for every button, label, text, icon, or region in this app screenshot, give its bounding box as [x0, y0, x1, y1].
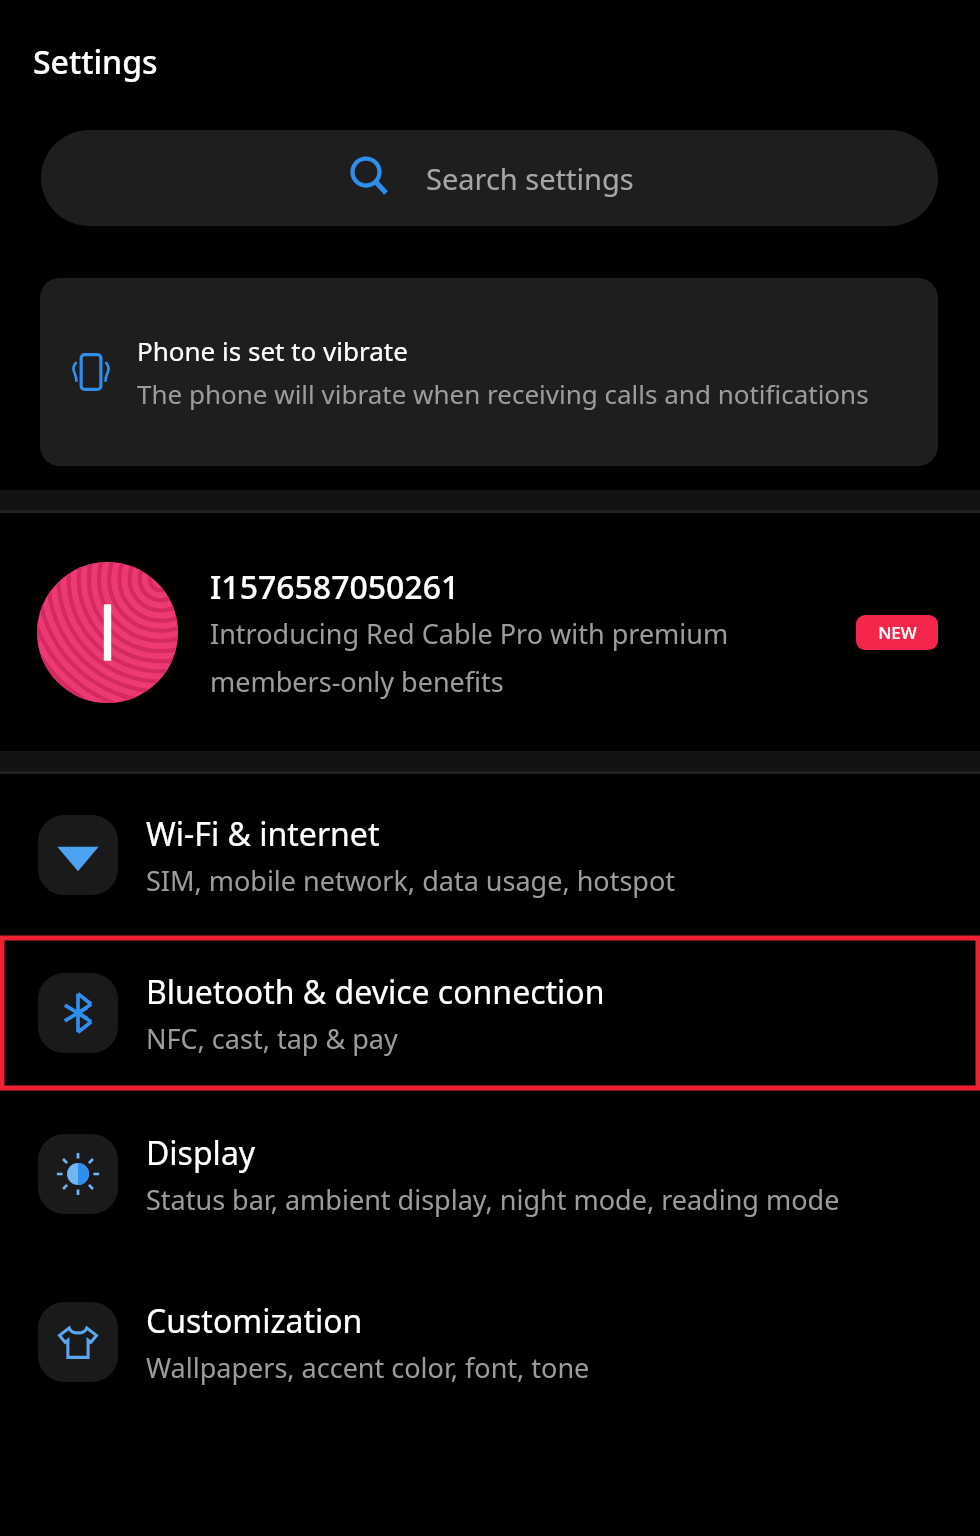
button[interactable]: Wi-Fi & internet [0, 774, 980, 936]
staticText: Settings [33, 40, 158, 84]
staticText: Search settings [426, 159, 634, 198]
staticText: The phone will vibrate when receiving ca… [137, 376, 869, 411]
staticText: Status bar, ambient display, night mode,… [146, 1181, 840, 1218]
button[interactable]: Account avatar [0, 513, 980, 751]
other: Account avatar [37, 562, 178, 703]
staticText: SIM, mobile network, data usage, hotspot [146, 862, 676, 899]
button[interactable]: Bluetooth & device connection [0, 936, 980, 1090]
staticText: Customization [146, 1299, 363, 1343]
button[interactable]: Phone is set to vibrate [40, 278, 938, 466]
button[interactable]: Display [0, 1090, 980, 1258]
staticText: Wallpapers, accent color, font, tone [146, 1349, 590, 1386]
staticText: Bluetooth & device connection [146, 970, 605, 1014]
button[interactable]: Search settings [41, 130, 938, 226]
button[interactable]: Customization [0, 1258, 980, 1426]
staticText: Display [146, 1131, 256, 1175]
staticText: NFC, cast, tap & pay [146, 1020, 398, 1057]
staticText: I1576587050261 [210, 565, 460, 609]
staticText: Wi-Fi & internet [146, 812, 380, 856]
staticText: Phone is set to vibrate [137, 333, 408, 368]
staticText: NEW [878, 621, 917, 644]
staticText: Introducing Red Cable Pro with premium m… [210, 615, 846, 700]
